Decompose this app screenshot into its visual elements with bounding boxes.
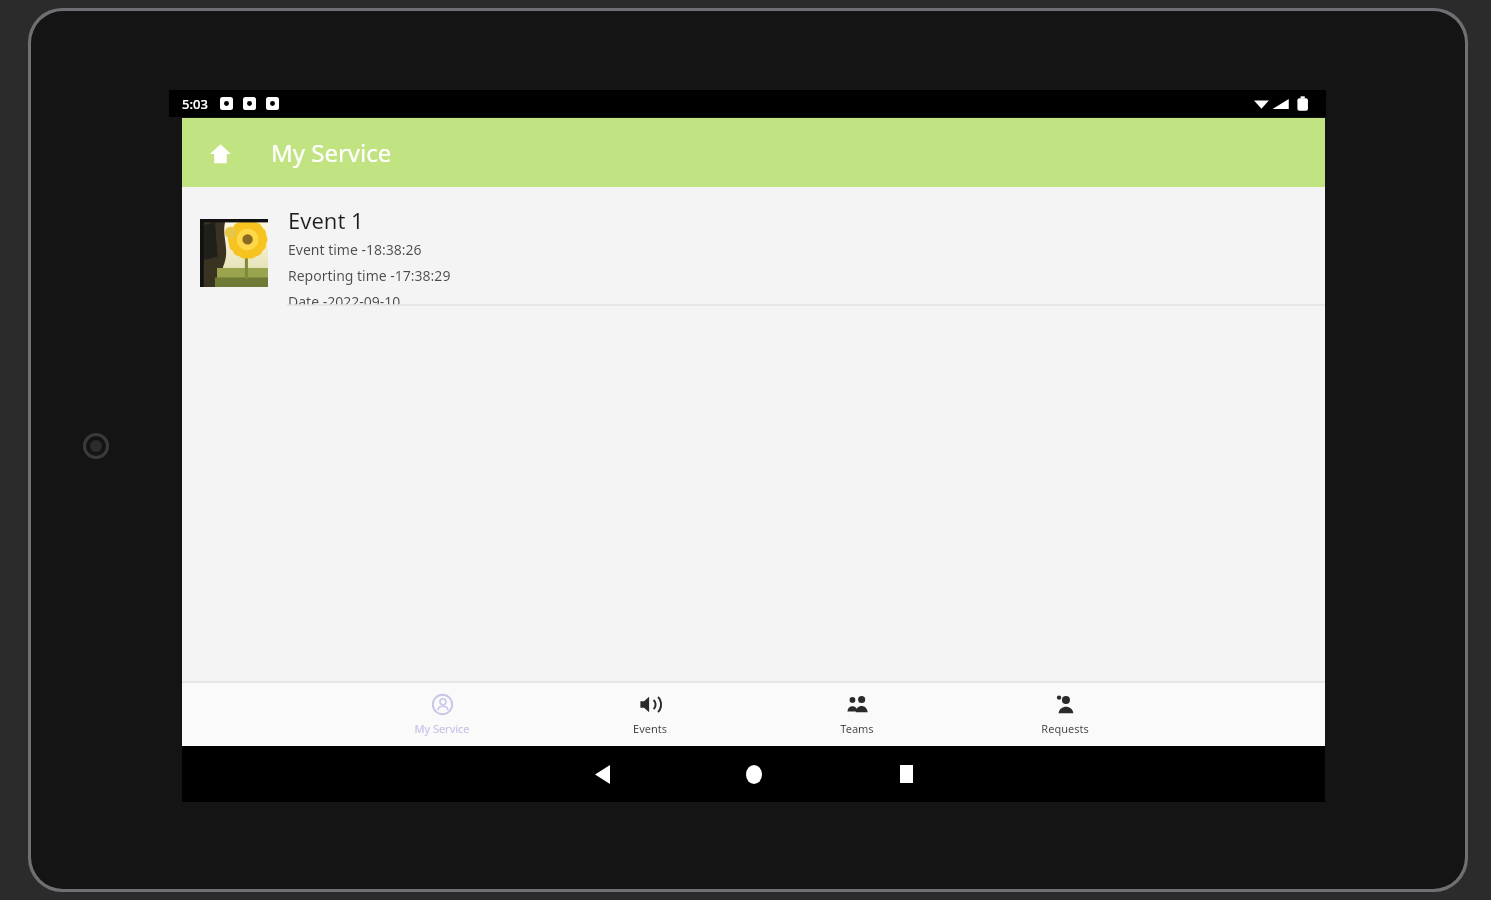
staticText: Reporting time -17:38:29	[288, 266, 451, 285]
button[interactable]: Requests	[990, 682, 1140, 746]
staticText: Event 1	[288, 205, 364, 235]
button[interactable]: Teams	[782, 682, 932, 746]
button[interactable]: My Service	[367, 682, 517, 746]
button[interactable]: Recent apps	[861, 751, 951, 797]
staticText: Requests	[1041, 721, 1089, 736]
button[interactable]: Home	[709, 751, 799, 797]
staticText: My Service	[271, 136, 392, 169]
button[interactable]: Events	[575, 682, 725, 746]
button[interactable]: Home	[199, 132, 241, 174]
staticText: Teams	[840, 721, 874, 736]
staticText: Event time -18:38:26	[288, 240, 422, 259]
staticText: Date -2022-09-10	[288, 292, 401, 305]
staticText: 5:03	[182, 95, 208, 113]
button[interactable]: Back	[557, 751, 647, 797]
button[interactable]: Event 1	[182, 187, 1325, 305]
staticText: My Service	[414, 721, 470, 736]
staticText: Events	[633, 721, 667, 736]
